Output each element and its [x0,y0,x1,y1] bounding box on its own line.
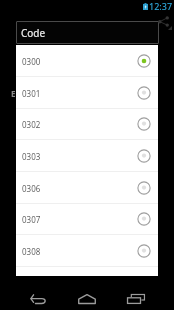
staticText: 0301 [22,88,41,99]
button[interactable]: 0306 [16,172,158,204]
button[interactable]: 0301 [16,77,158,109]
staticText: E [11,88,16,99]
staticText: 0308 [22,246,41,257]
button[interactable]: 0302 [16,108,158,140]
staticText: 0306 [22,183,41,194]
staticText: 0307 [22,214,41,225]
button[interactable]: Share [156,14,173,34]
button[interactable]: 0309 [16,267,158,299]
staticText: 12:37 [149,0,173,10]
staticText: Code [21,26,46,40]
button[interactable]: 0300 [16,45,158,77]
button[interactable]: Code [16,21,159,44]
button[interactable]: 0307 [16,203,158,235]
button[interactable]: Recent apps [119,281,153,305]
staticText: 0303 [22,151,41,162]
staticText: 0302 [22,119,41,130]
button[interactable]: 0308 [16,235,158,267]
staticText: 0300 [22,56,41,67]
button[interactable]: Home [70,281,104,305]
button[interactable]: Back [21,281,55,305]
button[interactable]: 0303 [16,140,158,172]
